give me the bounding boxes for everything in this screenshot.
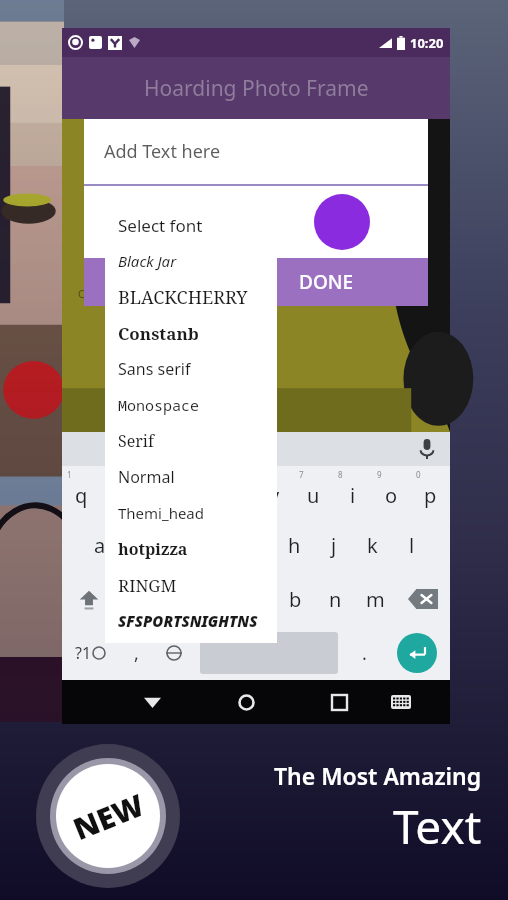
staticText: j	[331, 532, 337, 559]
button[interactable]: Back	[127, 680, 177, 724]
button[interactable]: Themi_head	[105, 495, 277, 531]
button[interactable]: j	[314, 518, 353, 572]
staticText: y	[269, 482, 280, 509]
staticText: h	[288, 532, 301, 559]
button[interactable]: RINGM	[105, 567, 277, 603]
staticText: w	[111, 482, 127, 509]
button[interactable]: d	[158, 518, 197, 572]
button[interactable]: DONE	[84, 258, 428, 306]
button[interactable]: Space	[200, 632, 338, 674]
button[interactable]: a	[81, 518, 119, 572]
staticText: e	[152, 482, 164, 509]
staticText: hotpizza	[118, 538, 188, 560]
staticText: l	[409, 532, 415, 559]
button[interactable]: n	[315, 572, 355, 626]
button[interactable]: .	[344, 626, 384, 680]
button[interactable]: Constanb	[105, 315, 277, 351]
button[interactable]: Home	[222, 680, 271, 724]
staticText: 8	[338, 469, 343, 480]
button[interactable]: v	[235, 572, 275, 626]
staticText: Themi_head	[118, 503, 204, 523]
staticText: BLACKCHERRY	[118, 285, 248, 310]
button[interactable]: k	[353, 518, 392, 572]
staticText: a	[94, 532, 106, 559]
button[interactable]: 8	[333, 466, 372, 518]
button[interactable]: c	[195, 572, 235, 626]
button[interactable]: Switch keyboard	[376, 680, 425, 724]
staticText: On 2015 new text as now lear to lear.	[78, 286, 268, 301]
staticText: Black Jar	[118, 251, 177, 271]
button[interactable]: 1	[62, 466, 100, 518]
button[interactable]: Add Text here	[84, 119, 428, 184]
staticText: Text	[393, 795, 482, 858]
staticText: 0	[416, 469, 421, 480]
button[interactable]: Language	[154, 626, 194, 680]
button[interactable]: Serif	[105, 423, 277, 459]
button[interactable]: Enter	[397, 633, 437, 673]
button[interactable]: BLACKCHERRY	[105, 279, 277, 315]
staticText: k	[367, 532, 378, 559]
button[interactable]: ,	[119, 626, 154, 680]
button[interactable]: Select font	[105, 207, 277, 243]
button[interactable]: z	[116, 572, 155, 626]
staticText: Select font	[118, 214, 203, 237]
button[interactable]: Recents	[315, 680, 364, 724]
button[interactable]: b	[275, 572, 315, 626]
button[interactable]: hotpizza	[105, 531, 277, 567]
staticText: Sans serif	[118, 358, 191, 380]
staticText: NEW	[67, 784, 150, 849]
button[interactable]: Monospace	[105, 387, 277, 423]
button[interactable]: h	[275, 518, 314, 572]
button[interactable]: 4	[177, 466, 216, 518]
staticText: Constanb	[118, 322, 199, 345]
staticText: Monospace	[118, 395, 200, 415]
button[interactable]: Black Jar	[105, 243, 277, 279]
staticText: SFSPORTSNIGHTNS	[118, 611, 258, 631]
staticText: b	[289, 586, 302, 613]
button[interactable]: f	[197, 518, 236, 572]
button[interactable]: x	[155, 572, 195, 626]
button[interactable]: SFSPORTSNIGHTNS	[105, 603, 277, 639]
staticText: q	[75, 482, 88, 509]
button[interactable]: Normal	[105, 459, 277, 495]
button[interactable]: 2	[100, 466, 138, 518]
staticText: x	[170, 586, 181, 613]
button[interactable]: Sans serif	[105, 351, 277, 387]
staticText: 3	[143, 469, 148, 480]
staticText: DONE	[299, 269, 354, 295]
button[interactable]: 9	[372, 466, 411, 518]
staticText: 9	[377, 469, 382, 480]
button[interactable]: 3	[138, 466, 177, 518]
staticText: Add Text here	[104, 139, 221, 164]
button[interactable]: l	[392, 518, 431, 572]
staticText: 1	[67, 469, 72, 480]
staticText: 7	[299, 469, 304, 480]
button[interactable]: m	[355, 572, 395, 626]
button[interactable]: Backspace	[395, 572, 450, 626]
staticText: u	[307, 482, 320, 509]
button[interactable]: Voice input	[404, 439, 450, 459]
button[interactable]: ?1	[62, 626, 119, 680]
button[interactable]: Pick color	[314, 194, 370, 250]
staticText: m	[366, 586, 385, 613]
button[interactable]: 0	[411, 466, 450, 518]
staticText: z	[131, 586, 141, 613]
button[interactable]: Shift	[62, 572, 116, 626]
staticText: The Most Amazing	[274, 760, 482, 791]
staticText: ,	[134, 641, 139, 666]
button[interactable]: s	[119, 518, 158, 572]
staticText: 10:20	[410, 34, 444, 52]
button[interactable]: 7	[294, 466, 333, 518]
staticText: ?1	[75, 642, 92, 664]
button[interactable]: 6	[255, 466, 294, 518]
